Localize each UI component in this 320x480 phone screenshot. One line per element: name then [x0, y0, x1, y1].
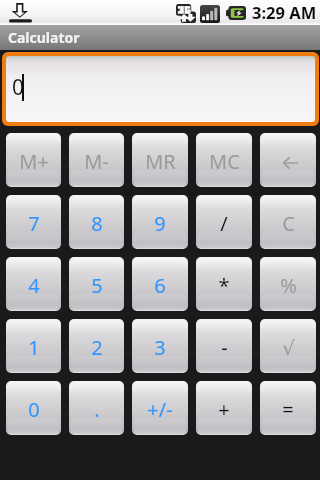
staticText: 3:29 AM — [252, 1, 317, 23]
other: Download — [9, 3, 32, 23]
button[interactable]: M- — [69, 133, 124, 187]
button[interactable]: . — [69, 381, 124, 435]
button[interactable]: 6 — [132, 257, 188, 311]
staticText: 7 — [28, 210, 40, 237]
button[interactable]: MR — [132, 133, 188, 187]
staticText: MR — [145, 148, 176, 175]
button[interactable]: MC — [196, 133, 252, 187]
button[interactable]: √ — [260, 319, 316, 373]
button[interactable]: 5 — [69, 257, 124, 311]
staticText: = — [282, 396, 294, 423]
staticText: 0 — [12, 73, 25, 102]
staticText: / — [220, 210, 228, 237]
button[interactable]: 7 — [6, 195, 61, 249]
button[interactable]: 2 — [69, 319, 124, 373]
staticText: 2 — [91, 334, 103, 361]
button[interactable]: 1 — [6, 319, 61, 373]
button[interactable]: M+ — [6, 133, 61, 187]
button[interactable]: +/- — [132, 381, 188, 435]
button[interactable]: - — [196, 319, 252, 373]
staticText: * — [218, 272, 230, 299]
staticText: M- — [84, 148, 109, 175]
button[interactable]: Backspace — [260, 133, 316, 187]
button[interactable]: = — [260, 381, 316, 435]
staticText: 9 — [154, 210, 166, 237]
staticText: MC — [209, 148, 240, 175]
button[interactable]: 3 — [132, 319, 188, 373]
staticText: 6 — [154, 272, 166, 299]
staticText: 1 — [28, 334, 40, 361]
staticText: 4 — [28, 272, 40, 299]
button[interactable]: * — [196, 257, 252, 311]
staticText: M+ — [19, 148, 49, 175]
other: Backspace — [283, 157, 298, 169]
button[interactable]: 9 — [132, 195, 188, 249]
staticText: C — [282, 210, 295, 237]
button[interactable]: 4 — [6, 257, 61, 311]
staticText: 5 — [91, 272, 103, 299]
button[interactable]: 0 — [6, 381, 61, 435]
staticText: 0 — [28, 396, 40, 423]
staticText: - — [221, 334, 228, 361]
staticText: +/- — [147, 396, 173, 423]
staticText: 8 — [91, 210, 103, 237]
button[interactable]: / — [196, 195, 252, 249]
button[interactable]: 0 — [6, 56, 315, 122]
button[interactable]: 8 — [69, 195, 124, 249]
staticText: Calculator — [8, 28, 80, 47]
staticText: 3 — [154, 334, 166, 361]
button[interactable]: + — [196, 381, 252, 435]
button[interactable]: C — [260, 195, 316, 249]
staticText: . — [94, 396, 100, 423]
staticText: % — [280, 272, 297, 299]
staticText: + — [218, 396, 230, 423]
staticText: √ — [282, 336, 295, 359]
button[interactable]: % — [260, 257, 316, 311]
